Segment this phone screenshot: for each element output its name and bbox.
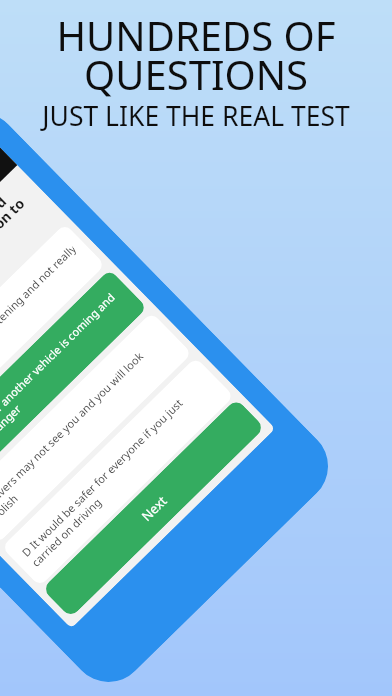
staticText: A Open your window and listening and not…	[0, 242, 88, 437]
button[interactable]: C Drivers may not see you and you will l…	[0, 312, 192, 544]
staticText: B If you can hear another vehicle is com…	[0, 290, 128, 482]
staticText: Your view is restricted by a parked car.…	[0, 183, 39, 394]
button[interactable]: D It would be safer for everyone if you …	[1, 357, 234, 587]
button[interactable]: Next	[42, 398, 265, 618]
staticText: Next	[137, 492, 171, 525]
button[interactable]: B If you can hear another vehicle is com…	[0, 269, 147, 498]
staticText: C Drivers may not see you and you will l…	[0, 349, 156, 526]
button[interactable]: A Open your window and listening and not…	[0, 223, 105, 455]
staticText: D It would be safer for everyone if you …	[18, 395, 196, 570]
staticText: HUNDREDS OF QUESTIONS	[56, 8, 336, 101]
staticText: JUST LIKE THE REAL TEST	[42, 98, 350, 134]
